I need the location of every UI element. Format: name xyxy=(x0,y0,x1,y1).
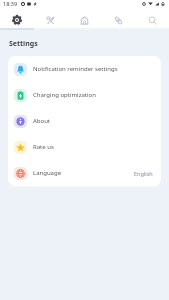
staticText: Notification reminder settings xyxy=(33,65,118,73)
staticText: Language xyxy=(33,169,62,177)
staticText: Charging optimization xyxy=(33,91,96,99)
button[interactable]: About xyxy=(8,108,161,134)
button[interactable]: Tools xyxy=(33,12,67,28)
button[interactable]: Home xyxy=(67,12,101,28)
button[interactable]: Notification reminder settings xyxy=(8,56,161,82)
button[interactable]: Charging optimization xyxy=(8,82,161,108)
button[interactable]: Link xyxy=(101,12,135,28)
button[interactable]: Search xyxy=(135,12,169,28)
staticText: About xyxy=(33,117,51,125)
staticText: Rate us xyxy=(33,143,54,151)
staticText: Settings xyxy=(9,39,38,49)
button[interactable]: Language xyxy=(8,160,161,186)
staticText: 18:39 xyxy=(3,0,18,7)
button[interactable]: Rate us xyxy=(8,134,161,160)
staticText: English xyxy=(134,170,153,177)
button[interactable]: Settings xyxy=(0,12,33,28)
